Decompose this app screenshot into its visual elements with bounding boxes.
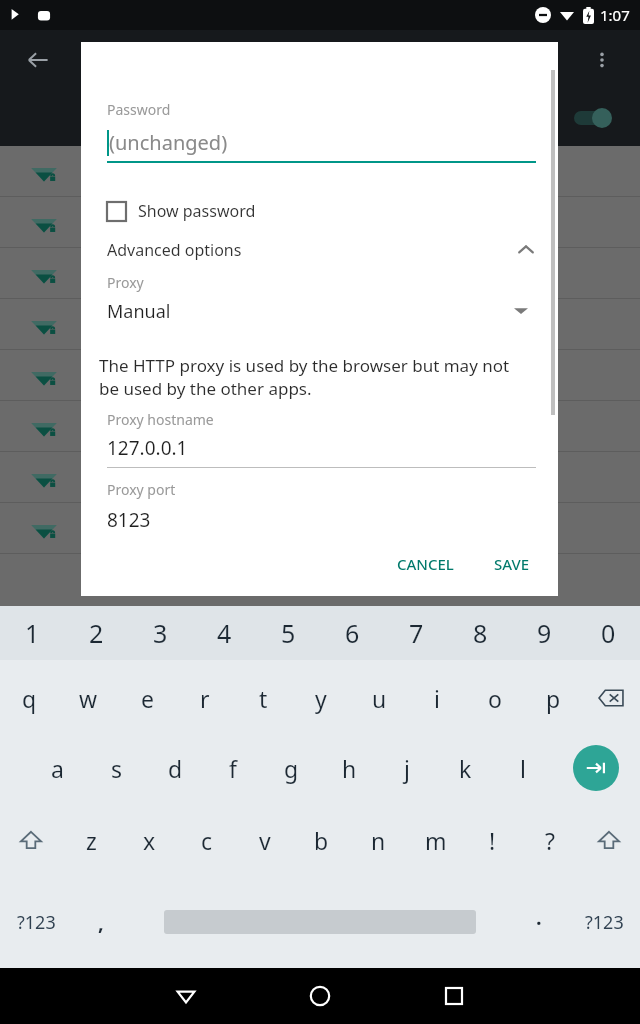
button[interactable]: ,	[72, 876, 130, 968]
button[interactable]: u	[350, 664, 408, 732]
button[interactable]: j	[378, 732, 436, 804]
button[interactable]	[0, 248, 640, 299]
staticText: 0	[601, 616, 616, 650]
button[interactable]: NETGEAR44	[0, 503, 640, 554]
button[interactable]: Show password	[107, 193, 256, 229]
staticText: 1:07	[600, 5, 630, 25]
staticText: g	[284, 753, 299, 784]
button[interactable]: Manual	[81, 296, 558, 326]
button[interactable]	[570, 104, 620, 132]
button[interactable]: CANCEL	[383, 546, 468, 582]
staticText: a	[51, 753, 64, 784]
button[interactable]: 5	[256, 606, 320, 660]
staticText: Password	[107, 100, 171, 119]
staticText: Manual	[107, 299, 171, 324]
button[interactable]: e	[118, 664, 176, 732]
button[interactable]: d	[146, 732, 204, 804]
button[interactable]: 3	[128, 606, 192, 660]
button[interactable]	[0, 401, 640, 452]
button[interactable]: Recents	[418, 968, 490, 1024]
button[interactable]: 6	[320, 606, 384, 660]
staticText: ?123	[17, 910, 56, 935]
button[interactable]: x	[120, 804, 178, 876]
staticText: SAVE	[494, 554, 530, 574]
staticText: s	[111, 753, 123, 784]
button[interactable]: c	[178, 804, 236, 876]
staticText: i	[434, 683, 440, 714]
staticText: j	[404, 753, 410, 784]
button[interactable]: 9	[512, 606, 576, 660]
button[interactable]: 8	[448, 606, 512, 660]
button[interactable]: v	[236, 804, 293, 876]
button[interactable]	[0, 350, 640, 401]
button[interactable]: ?123	[568, 876, 640, 968]
button[interactable]: w	[59, 664, 118, 732]
button[interactable]: i	[408, 664, 466, 732]
button[interactable]: Back	[150, 968, 222, 1024]
staticText: d	[168, 753, 183, 784]
button[interactable]: k	[436, 732, 494, 804]
staticText: f	[229, 753, 237, 784]
button[interactable]: t	[234, 664, 292, 732]
button[interactable]: ?	[521, 804, 578, 876]
button[interactable]: b	[293, 804, 350, 876]
button[interactable]: 2	[64, 606, 128, 660]
staticText: b	[314, 825, 329, 856]
staticText: 127.0.0.1	[107, 435, 188, 461]
staticText: p	[546, 683, 561, 714]
staticText: q	[22, 683, 37, 714]
button[interactable]	[0, 452, 640, 503]
button[interactable]: q	[0, 664, 59, 732]
button[interactable]: f	[204, 732, 262, 804]
staticText: l	[520, 753, 526, 784]
staticText: 6	[345, 616, 360, 650]
button[interactable]: 1	[0, 606, 64, 660]
button[interactable]: z	[62, 804, 120, 876]
staticText: 4	[217, 616, 232, 650]
button[interactable]: ·	[510, 876, 568, 968]
button[interactable]: ?123	[0, 876, 72, 968]
button[interactable]: Back	[14, 36, 62, 84]
staticText: The HTTP proxy is used by the browser bu…	[99, 354, 518, 400]
button[interactable]: Enter	[552, 732, 640, 804]
staticText: e	[141, 683, 154, 714]
staticText: c	[201, 825, 213, 856]
button[interactable]: p	[524, 664, 582, 732]
button[interactable]: Shift	[578, 804, 640, 876]
button[interactable]	[0, 146, 640, 197]
staticText: w	[79, 683, 98, 714]
staticText: (unchanged)	[109, 129, 228, 156]
button[interactable]: SAVE	[480, 546, 544, 582]
button[interactable]: More options	[578, 36, 626, 84]
button[interactable]	[0, 197, 640, 248]
staticText: 7	[409, 616, 424, 650]
staticText: Advanced options	[107, 239, 242, 261]
button[interactable]: a	[28, 732, 87, 804]
button[interactable]: !	[464, 804, 521, 876]
button[interactable]: o	[466, 664, 524, 732]
button[interactable]	[0, 299, 640, 350]
button[interactable]: Backspace	[582, 664, 640, 732]
button[interactable]: Shift	[0, 804, 62, 876]
button[interactable]: Space	[130, 876, 510, 968]
button[interactable]: 4	[192, 606, 256, 660]
staticText: Proxy hostname	[107, 410, 214, 429]
button[interactable]: m	[407, 804, 464, 876]
button[interactable]: y	[292, 664, 350, 732]
button[interactable]: n	[350, 804, 407, 876]
button[interactable]: g	[262, 732, 320, 804]
staticText: m	[425, 825, 447, 856]
button[interactable]: s	[87, 732, 146, 804]
button[interactable]: r	[176, 664, 234, 732]
button[interactable]: 7	[384, 606, 448, 660]
button[interactable]: Home	[284, 968, 356, 1024]
staticText: CANCEL	[397, 554, 454, 574]
staticText: 2	[89, 616, 104, 650]
button[interactable]: h	[320, 732, 378, 804]
staticText: 3	[153, 616, 168, 650]
staticText: 9	[537, 616, 552, 650]
button[interactable]: l	[494, 732, 552, 804]
button[interactable]: 0	[576, 606, 640, 660]
staticText: NETGEAR44	[84, 517, 179, 540]
button[interactable]: Advanced options	[81, 233, 558, 267]
